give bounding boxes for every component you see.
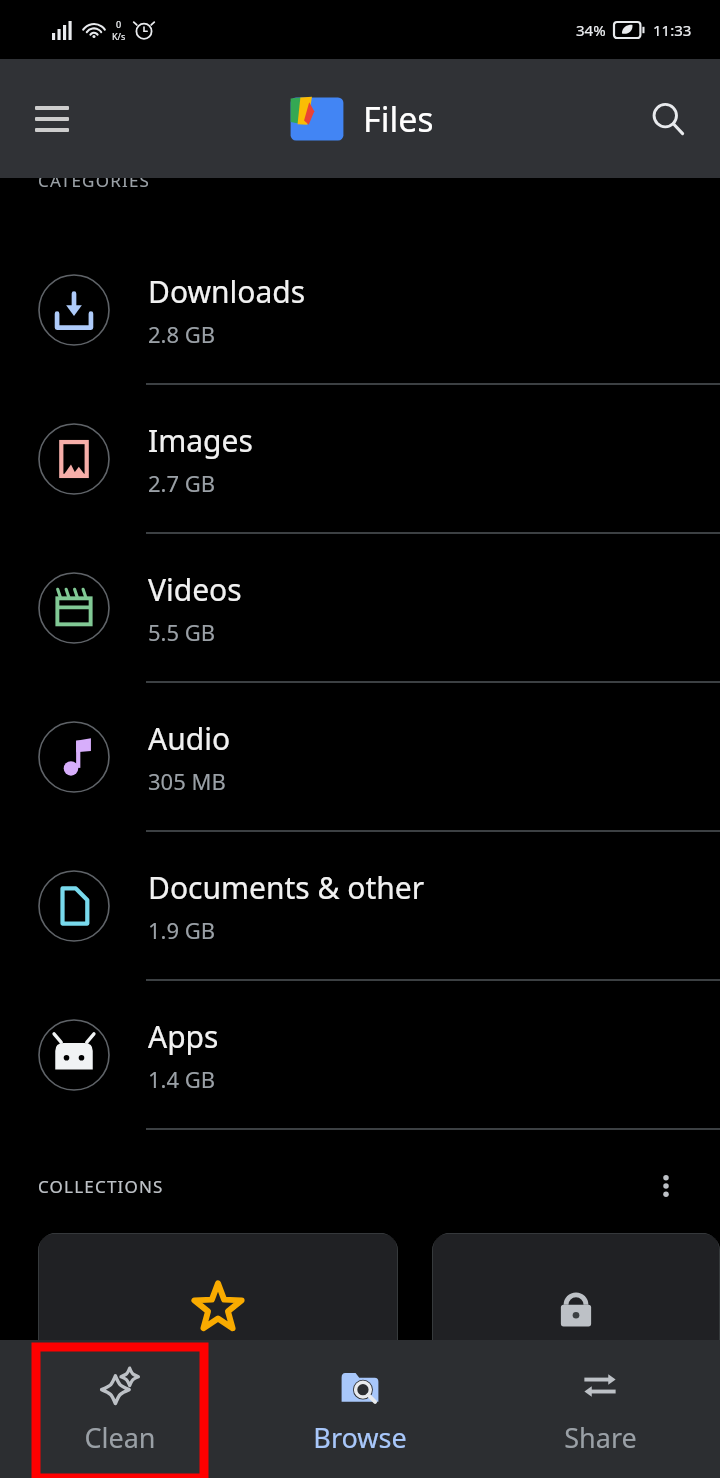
button[interactable]: More options [642,1162,690,1210]
button[interactable]: Documents & other [0,832,720,981]
staticText: Clean [84,1419,156,1456]
staticText: 2.8 GB [148,319,216,349]
staticText: 1.9 GB [148,915,216,945]
staticText: Files [363,96,434,142]
staticText: 2.7 GB [148,468,216,498]
staticText: 34% [576,20,606,40]
button[interactable] [432,1233,720,1340]
staticText: Browse [313,1419,407,1456]
staticText: COLLECTIONS [38,1175,164,1198]
button[interactable]: Clean [36,1340,204,1478]
staticText: Downloads [148,271,306,312]
button[interactable]: Images [0,385,720,534]
staticText: Share [564,1419,637,1456]
staticText: Videos [148,569,242,610]
button[interactable]: Browse [276,1340,444,1478]
staticText: 305 MB [148,766,226,796]
staticText: K/s [112,30,126,42]
staticText: Documents & other [148,867,425,908]
button[interactable]: Search [638,89,698,149]
button[interactable] [38,1233,398,1340]
button[interactable]: Share [516,1340,684,1478]
button[interactable]: Videos [0,534,720,683]
staticText: Audio [148,718,231,759]
staticText: 1.4 GB [148,1064,216,1094]
staticText: CATEGORIES [38,169,151,192]
button[interactable]: Downloads [0,236,720,385]
staticText: 11:33 [653,20,692,40]
staticText: 0 [116,18,122,30]
button[interactable]: Menu [22,89,82,149]
button[interactable]: Apps [0,981,720,1130]
button[interactable]: Audio [0,683,720,832]
staticText: Images [148,420,253,461]
staticText: 5.5 GB [148,617,216,647]
staticText: Apps [148,1016,219,1057]
